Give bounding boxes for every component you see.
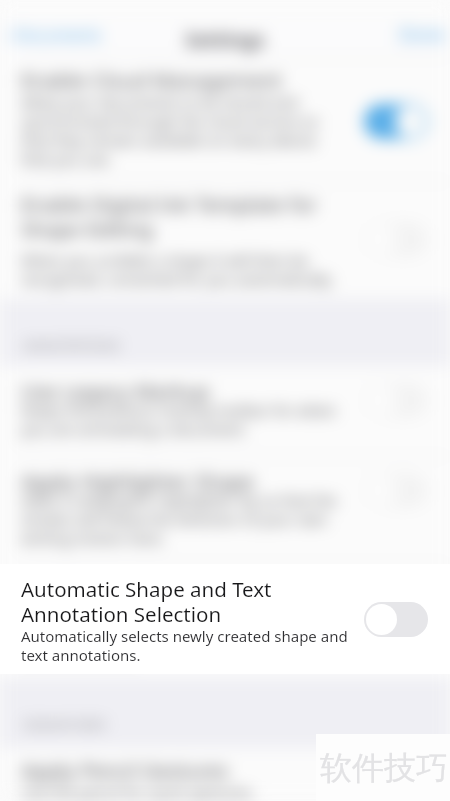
staticText: Automatic Shape and Text Annotation Sele…	[21, 575, 299, 628]
button[interactable]: Use Legacy Markup	[0, 366, 450, 455]
staticText: When you scribble a shape it will then b…	[21, 250, 343, 289]
button[interactable]: Toggle off	[364, 602, 428, 637]
button[interactable]: Done	[399, 22, 445, 47]
button[interactable]: Toggle on	[364, 104, 428, 139]
button[interactable]: Enable Cloud Management	[0, 58, 450, 180]
button[interactable]: Done	[399, 22, 445, 47]
staticText: ‹ Documents	[6, 24, 102, 46]
staticText: Keeps the previous markup toolbar for wh…	[21, 400, 339, 439]
button[interactable]: Apply Pencil Gestures	[0, 748, 450, 801]
staticText: Use Legacy Markup	[21, 377, 313, 405]
button[interactable]: Apply Highlighter Shape	[0, 457, 450, 563]
staticText: Use the pencil for quick gestures.	[21, 782, 339, 801]
staticText: Done	[399, 22, 445, 47]
staticText: Use Legacy Markup	[21, 377, 313, 405]
staticText: Apply Pencil Gestures	[21, 756, 313, 784]
button[interactable]: Back	[6, 24, 102, 46]
button[interactable]: Automatic Shape and Text Annotation Sele…	[0, 564, 450, 678]
button[interactable]: Enable Cloud Management	[0, 58, 450, 180]
button[interactable]: Back	[6, 24, 102, 46]
staticText: ANNOTATIONS	[23, 336, 223, 355]
staticText: Settings	[185, 26, 265, 53]
staticText: Adds a calligraphic highlighter tip so t…	[21, 490, 339, 548]
staticText: ‹ Documents	[6, 24, 102, 46]
button[interactable]: Toggle off	[364, 762, 428, 797]
staticText: Allow your documents to be stored and sy…	[21, 92, 333, 169]
staticText: Allow your documents to be stored and sy…	[21, 92, 333, 169]
staticText: Adds a calligraphic highlighter tip so t…	[21, 490, 339, 548]
button[interactable]: Toggle off	[364, 602, 428, 637]
staticText: SIGNATURES	[23, 715, 223, 734]
staticText: When you scribble a shape it will then b…	[21, 250, 343, 289]
staticText: Keeps the previous markup toolbar for wh…	[21, 400, 339, 439]
staticText: Settings	[185, 26, 265, 53]
staticText: Apply Pencil Gestures	[21, 756, 313, 784]
button[interactable]: Apply Pencil Gestures	[0, 748, 450, 801]
staticText: Automatically selects newly created shap…	[21, 626, 351, 665]
button[interactable]: Use Legacy Markup	[0, 366, 450, 455]
button[interactable]: Apply Highlighter Shape	[0, 457, 450, 563]
staticText: Enable Digital Ink Template for Shape Ed…	[21, 190, 341, 243]
staticText: Enable Cloud Management	[21, 66, 311, 94]
button[interactable]: Toggle off	[364, 762, 428, 797]
button[interactable]: Enable Digital Ink Template for Shape Ed…	[0, 182, 450, 299]
staticText: Enable Digital Ink Template for Shape Ed…	[21, 190, 341, 243]
staticText: Automatically selects newly created shap…	[21, 626, 351, 665]
staticText: ANNOTATIONS	[23, 336, 223, 355]
staticText: Apply Highlighter Shape	[21, 467, 313, 495]
staticText: 软件技巧	[320, 748, 448, 788]
staticText: Use the pencil for quick gestures.	[21, 782, 339, 801]
button[interactable]: Enable Digital Ink Template for Shape Ed…	[0, 182, 450, 299]
staticText: Automatic Shape and Text Annotation Sele…	[21, 575, 299, 628]
staticText: SIGNATURES	[23, 715, 223, 734]
staticText: Enable Cloud Management	[21, 66, 311, 94]
staticText: Done	[399, 22, 445, 47]
button[interactable]: Toggle on	[364, 104, 428, 139]
button[interactable]: Automatic Shape and Text Annotation Sele…	[0, 564, 450, 678]
staticText: Apply Highlighter Shape	[21, 467, 313, 495]
